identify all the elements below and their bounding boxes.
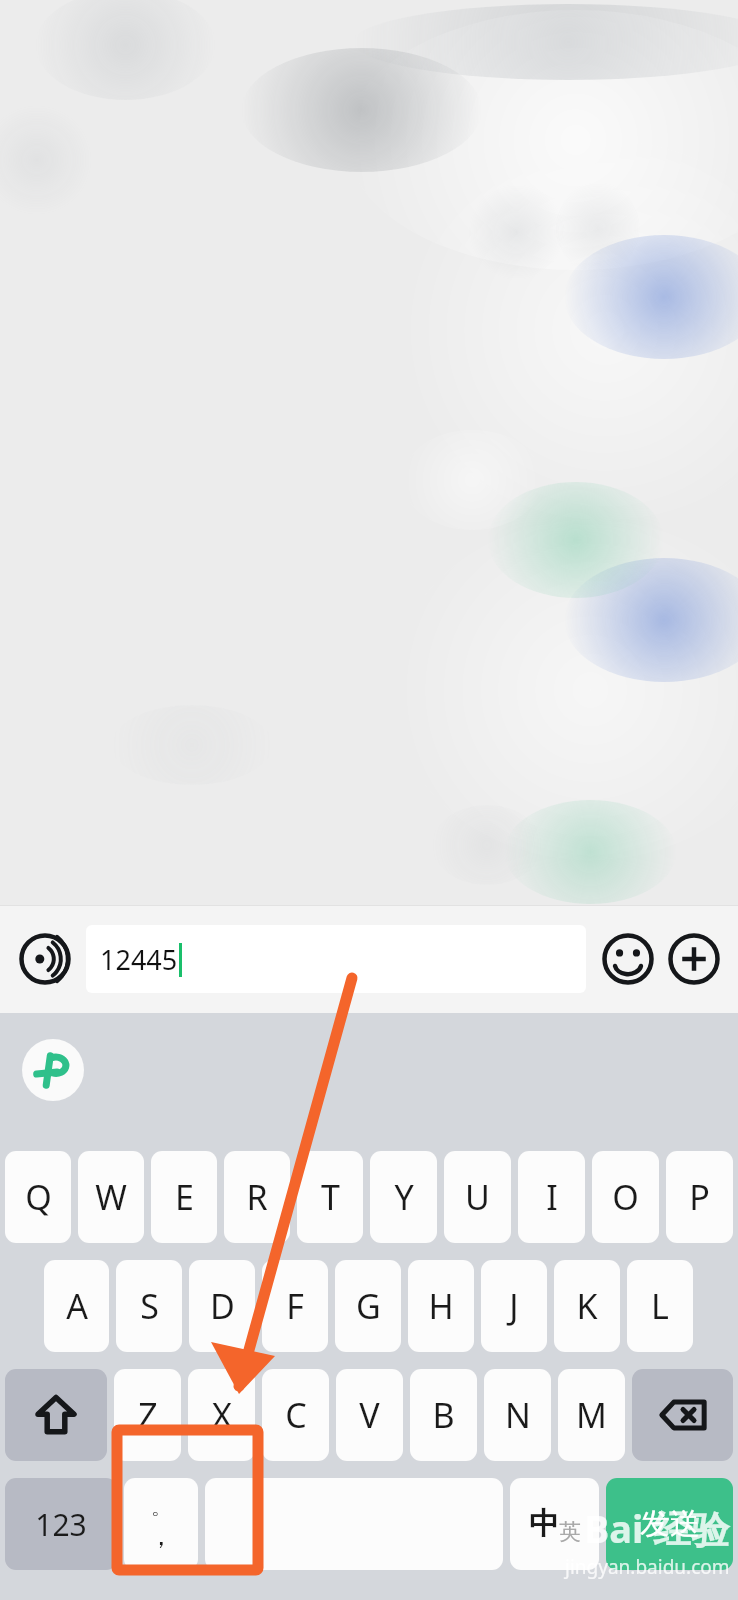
button[interactable]: F [262, 1260, 328, 1352]
button[interactable]: More [664, 929, 724, 989]
button[interactable]: 12445 [86, 925, 586, 993]
staticText: Z [138, 1392, 158, 1438]
staticText: U [465, 1174, 490, 1220]
button[interactable]: W [78, 1151, 144, 1243]
staticText: I [546, 1174, 558, 1220]
staticText: Q [25, 1174, 52, 1220]
staticText: C [285, 1392, 307, 1438]
button[interactable]: Z [114, 1369, 181, 1461]
button[interactable]: Q [5, 1151, 71, 1243]
button[interactable]: L [627, 1260, 693, 1352]
button[interactable]: K [554, 1260, 620, 1352]
staticText: G [356, 1283, 381, 1329]
button[interactable]: M [558, 1369, 625, 1461]
button[interactable]: J [481, 1260, 547, 1352]
staticText: J [509, 1283, 519, 1329]
button[interactable]: D [189, 1260, 255, 1352]
staticText: V [359, 1392, 380, 1438]
staticText: R [246, 1174, 268, 1220]
staticText: A [66, 1283, 88, 1329]
button[interactable]: Input method settings [22, 1039, 84, 1101]
staticText: S [140, 1283, 159, 1329]
staticText: jingyan.baidu.com [565, 1554, 730, 1580]
button[interactable]: V [336, 1369, 403, 1461]
button[interactable]: Y [370, 1151, 437, 1243]
button[interactable]: U [444, 1151, 511, 1243]
button[interactable]: B [410, 1369, 477, 1461]
staticText: Bai 经验 [584, 1502, 730, 1554]
button[interactable]: Emoji [598, 929, 658, 989]
staticText: F [286, 1283, 304, 1329]
button[interactable]: Voice input [14, 928, 76, 990]
button[interactable]: G [335, 1260, 401, 1352]
staticText: P [689, 1174, 710, 1220]
button[interactable]: N [484, 1369, 551, 1461]
staticText: 发送 [640, 1505, 700, 1543]
button[interactable]: T [297, 1151, 363, 1243]
staticText: ， [148, 1520, 174, 1553]
button[interactable]: O [592, 1151, 659, 1243]
staticText: L [651, 1283, 669, 1329]
staticText: T [321, 1174, 340, 1220]
button[interactable]: P [666, 1151, 733, 1243]
staticText: B [432, 1392, 455, 1438]
staticText: 中 [529, 1505, 559, 1543]
button[interactable] [5, 1369, 107, 1461]
staticText: X [212, 1392, 232, 1438]
button[interactable]: 123 [5, 1478, 117, 1570]
staticText: E [175, 1174, 194, 1220]
staticText: O [612, 1174, 639, 1220]
staticText: 12445 [100, 941, 178, 978]
staticText: W [95, 1174, 127, 1220]
button[interactable]: C [262, 1369, 329, 1461]
button[interactable]: S [116, 1260, 182, 1352]
button[interactable]: X [188, 1369, 255, 1461]
button[interactable]: E [151, 1151, 217, 1243]
button[interactable] [205, 1478, 503, 1570]
staticText: K [576, 1283, 598, 1329]
staticText: M [576, 1392, 607, 1438]
staticText: Y [394, 1174, 414, 1220]
button[interactable]: Switch Chinese English [510, 1478, 599, 1570]
staticText: N [505, 1392, 531, 1438]
staticText: 123 [35, 1504, 87, 1545]
staticText: H [428, 1283, 454, 1329]
staticText: 。 [151, 1495, 171, 1520]
staticText: D [210, 1283, 235, 1329]
staticText: 英 [559, 1518, 581, 1546]
button[interactable]: H [408, 1260, 474, 1352]
button[interactable]: 发送 [606, 1478, 733, 1570]
button[interactable]: A [44, 1260, 109, 1352]
button[interactable] [632, 1369, 733, 1461]
button[interactable]: R [224, 1151, 290, 1243]
button[interactable]: 。 [124, 1478, 198, 1570]
button[interactable]: I [518, 1151, 585, 1243]
